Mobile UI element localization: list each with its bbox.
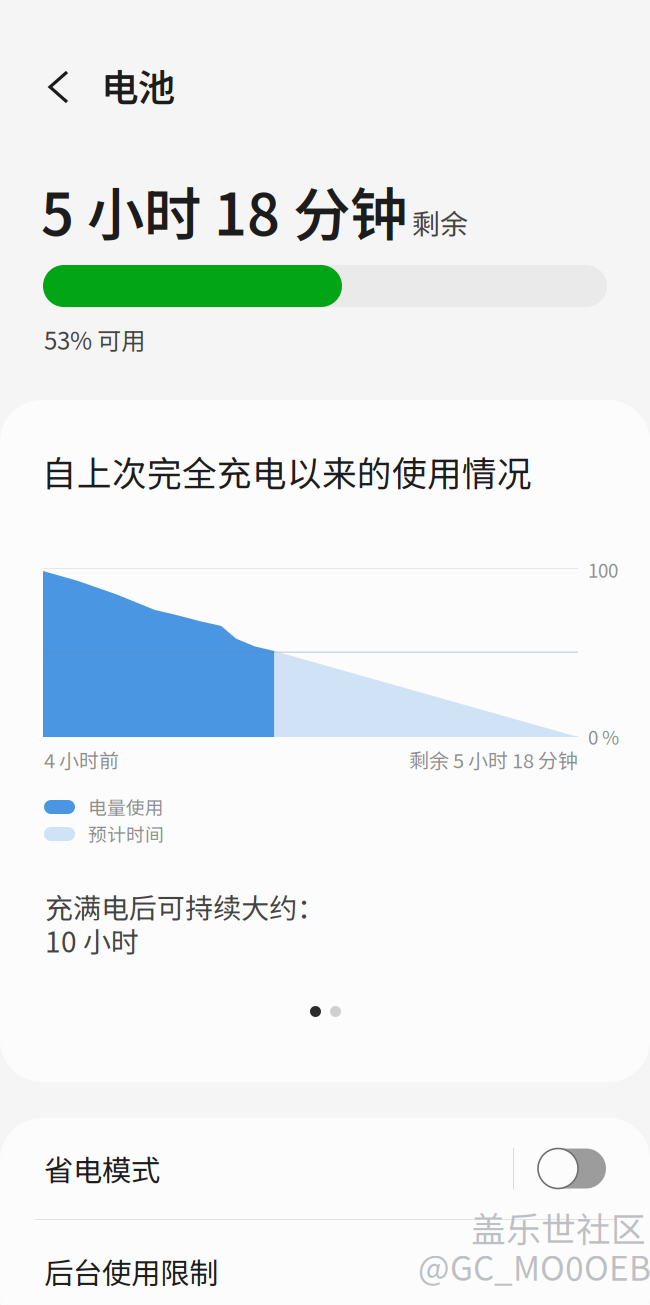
staticText: 充满电后可持续大约：	[45, 886, 325, 926]
staticText: 100	[588, 556, 618, 583]
staticText: 10 小时	[45, 920, 139, 960]
staticText: 53% 可用	[44, 322, 145, 357]
staticText: 剩余	[412, 202, 468, 242]
button[interactable]: Back	[31, 54, 86, 120]
button[interactable]: 后台使用限制	[0, 1220, 650, 1305]
staticText: 5 小时 18 分钟	[41, 169, 407, 252]
button[interactable]: 省电模式	[0, 1118, 650, 1219]
staticText: 盖乐世社区	[471, 1202, 646, 1252]
staticText: 4 小时前	[44, 745, 119, 774]
staticText: 省电模式	[44, 1147, 160, 1190]
staticText: 自上次完全充电以来的使用情况	[42, 446, 532, 496]
staticText: 电池	[101, 58, 175, 112]
staticText: 0 %	[588, 723, 619, 750]
staticText: 剩余 5 小时 18 分钟	[409, 745, 578, 774]
staticText: 电量使用	[88, 793, 164, 820]
staticText: 后台使用限制	[44, 1250, 218, 1292]
staticText: 预计时间	[88, 820, 164, 847]
staticText: @GC_MO0OEBM	[418, 1242, 650, 1290]
